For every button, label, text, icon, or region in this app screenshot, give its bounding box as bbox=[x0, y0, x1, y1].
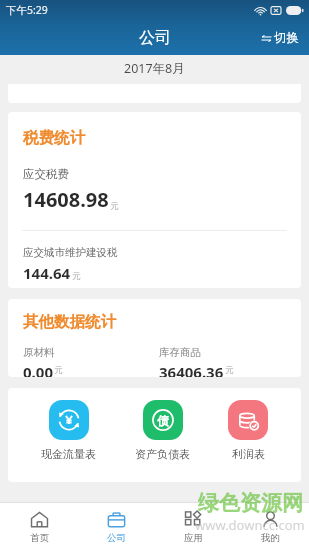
staticText: 库存商品 bbox=[159, 346, 201, 359]
staticText: 资产负债表 bbox=[135, 447, 190, 461]
button[interactable]: 应用 bbox=[155, 503, 232, 550]
button[interactable]: 现金流量表 bbox=[35, 400, 102, 461]
staticText: 元 bbox=[54, 365, 63, 376]
staticText: 元 bbox=[72, 271, 81, 282]
staticText: 利润表 bbox=[232, 447, 265, 461]
staticText: 绿色资源网 bbox=[198, 490, 303, 516]
staticText: 应交城市维护建设税 bbox=[23, 246, 118, 259]
staticText: 下午5:29 bbox=[6, 3, 48, 17]
staticText: 元 bbox=[225, 365, 234, 376]
button[interactable]: 切换 bbox=[257, 26, 303, 50]
staticText: 其他数据统计 bbox=[23, 312, 116, 332]
staticText: 债 bbox=[157, 413, 169, 428]
button[interactable]: 公司 bbox=[78, 503, 155, 550]
other: 公司 bbox=[107, 510, 126, 529]
staticText: 公司 bbox=[107, 532, 126, 544]
staticText: 切换 bbox=[274, 30, 299, 46]
staticText: 2017年8月 bbox=[124, 60, 185, 77]
other: 我的 bbox=[261, 510, 280, 529]
staticText: 36406.36 bbox=[159, 362, 224, 377]
staticText: 现金流量表 bbox=[41, 447, 96, 461]
other: WiFi bbox=[255, 6, 266, 15]
staticText: 首页 bbox=[30, 532, 49, 544]
staticText: www.downcc.com bbox=[195, 516, 305, 534]
other: Battery bbox=[286, 6, 303, 15]
button[interactable]: 2017年8月 bbox=[0, 55, 309, 82]
other: 应用 bbox=[184, 510, 203, 529]
button[interactable]: 我的 bbox=[232, 503, 309, 550]
staticText: 应交税费 bbox=[23, 167, 69, 181]
staticText: 14608.98 bbox=[23, 186, 109, 213]
staticText: 144.64 bbox=[23, 263, 71, 283]
staticText: 应用 bbox=[184, 532, 203, 544]
staticText: 0.00 bbox=[23, 362, 53, 377]
other: No signal bbox=[271, 6, 281, 15]
staticText: 公司 bbox=[139, 28, 171, 48]
staticText: 原材料 bbox=[23, 346, 55, 359]
button[interactable]: 首页 bbox=[0, 503, 78, 550]
button[interactable]: 利润表 bbox=[222, 400, 274, 461]
button[interactable]: 债 bbox=[129, 400, 196, 461]
other: 首页 bbox=[30, 510, 49, 529]
staticText: 元 bbox=[110, 201, 119, 212]
staticText: 我的 bbox=[261, 532, 280, 544]
staticText: 税费统计 bbox=[23, 128, 85, 148]
